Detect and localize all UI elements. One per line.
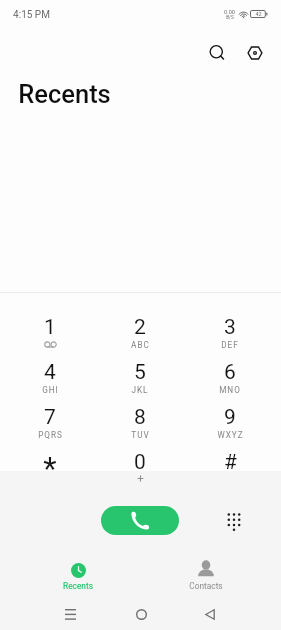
staticText: PQRS — [38, 430, 63, 440]
button[interactable]: 0 — [95, 446, 185, 491]
staticText: GHI — [42, 385, 59, 395]
staticText: TUV — [131, 430, 150, 440]
button[interactable]: 8 — [95, 401, 185, 446]
staticText: WXYZ — [217, 430, 244, 440]
button[interactable]: 1 — [5, 311, 95, 356]
staticText: 0.00 — [224, 9, 235, 16]
button[interactable]: 4 — [5, 356, 95, 401]
button[interactable]: Settings — [241, 39, 269, 67]
staticText: 9 — [224, 405, 236, 430]
staticText: + — [137, 471, 144, 484]
staticText: 3 — [224, 315, 236, 340]
button[interactable]: 3 — [185, 311, 275, 356]
staticText: 4:15 PM — [13, 9, 50, 21]
button[interactable]: Back — [186, 599, 234, 629]
staticText: 42 — [255, 11, 262, 17]
button[interactable]: # — [185, 446, 275, 491]
button[interactable]: 6 — [185, 356, 275, 401]
staticText: Contacts — [189, 581, 223, 591]
button[interactable]: * — [5, 446, 95, 491]
staticText: 5 — [134, 360, 146, 385]
staticText: MNO — [219, 385, 241, 395]
staticText: 6 — [224, 360, 236, 385]
button[interactable]: Menu — [46, 599, 94, 629]
button[interactable]: Contacts — [156, 548, 255, 596]
staticText: Recents — [63, 581, 93, 591]
staticText: # — [224, 450, 237, 475]
staticText: ABC — [131, 340, 150, 350]
staticText: 7 — [44, 405, 56, 430]
staticText: 8 — [134, 405, 146, 430]
button[interactable]: Home — [117, 599, 165, 629]
staticText: JKL — [131, 385, 149, 395]
button[interactable]: 9 — [185, 401, 275, 446]
staticText: 1 — [44, 315, 56, 340]
button[interactable]: 7 — [5, 401, 95, 446]
staticText: 4 — [44, 360, 56, 385]
button[interactable]: Dialpad — [220, 507, 247, 534]
button[interactable]: Recents — [28, 548, 127, 596]
staticText: 2 — [134, 315, 146, 340]
staticText: B/S — [226, 15, 234, 20]
staticText: DEF — [221, 340, 239, 350]
button[interactable]: 2 — [95, 311, 185, 356]
button[interactable]: 5 — [95, 356, 185, 401]
staticText: Recents — [18, 79, 111, 109]
staticText: 0 — [134, 450, 146, 475]
staticText: * — [43, 450, 57, 486]
button[interactable]: Call — [101, 506, 179, 535]
button[interactable]: Search — [203, 39, 231, 67]
